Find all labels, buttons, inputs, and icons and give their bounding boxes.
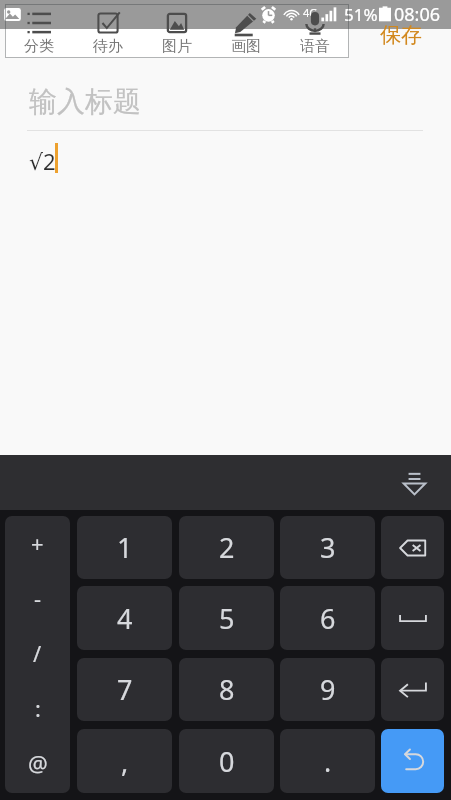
button[interactable]: 保存 <box>355 4 447 58</box>
button[interactable]: Space <box>381 586 444 650</box>
staticText: 3 <box>320 529 336 566</box>
staticText: 9 <box>320 671 336 708</box>
staticText: 6 <box>320 600 336 637</box>
staticText: 4 <box>117 600 133 637</box>
staticText: 51% <box>344 3 378 26</box>
staticText: 待办 <box>93 37 123 56</box>
button[interactable]: 8 <box>179 658 274 721</box>
staticText: 0 <box>219 743 235 780</box>
staticText: - <box>34 583 42 613</box>
staticText: + <box>31 528 44 558</box>
staticText: 输入标题 <box>29 84 141 119</box>
button[interactable]: Enter <box>381 729 444 793</box>
button[interactable]: Hide keyboard <box>389 455 451 510</box>
staticText: @ <box>28 748 48 778</box>
staticText: 08:06 <box>394 2 441 27</box>
staticText: 4G <box>303 5 318 20</box>
button[interactable]: 0 <box>179 729 274 793</box>
button[interactable]: 画图 <box>211 4 280 58</box>
button[interactable]: New line <box>381 658 444 721</box>
button[interactable]: 语音 <box>280 4 349 58</box>
staticText: 2 <box>219 529 235 566</box>
button[interactable]: 3 <box>280 516 375 579</box>
staticText: 8 <box>219 671 235 708</box>
staticText: √2 <box>29 146 56 176</box>
button[interactable]: 5 <box>179 586 274 650</box>
button[interactable]: 图片 <box>142 4 211 58</box>
staticText: 1 <box>117 529 133 566</box>
staticText: 图片 <box>162 37 192 56</box>
staticText: : <box>35 693 41 723</box>
button[interactable]: . <box>280 729 375 793</box>
staticText: . <box>324 743 332 780</box>
staticText: 5 <box>219 600 235 637</box>
button[interactable]: 4 <box>77 586 172 650</box>
staticText: 画图 <box>231 37 261 56</box>
staticText: / <box>33 638 42 668</box>
staticText: , <box>121 743 129 780</box>
button[interactable]: Backspace <box>381 516 444 579</box>
staticText: 语音 <box>300 37 330 56</box>
staticText: 7 <box>117 671 133 708</box>
button[interactable]: 分类 <box>5 4 73 58</box>
button[interactable]: + <box>5 516 70 793</box>
button[interactable]: , <box>77 729 172 793</box>
button[interactable]: 待办 <box>73 4 142 58</box>
staticText: 分类 <box>24 37 54 56</box>
button[interactable]: 6 <box>280 586 375 650</box>
button[interactable]: 9 <box>280 658 375 721</box>
button[interactable]: 7 <box>77 658 172 721</box>
staticText: 保存 <box>380 22 422 48</box>
button[interactable]: 1 <box>77 516 172 579</box>
button[interactable]: 2 <box>179 516 274 579</box>
